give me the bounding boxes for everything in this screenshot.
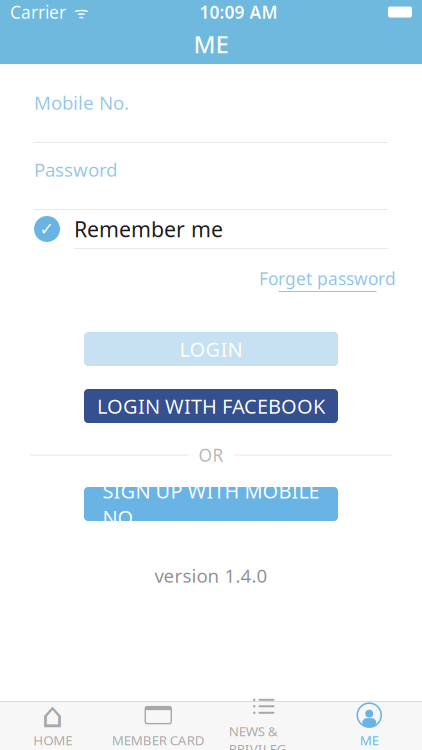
staticText: version 1.4.0 (154, 563, 267, 588)
staticText: ME (360, 731, 379, 749)
staticText: 10:09 AM (199, 0, 277, 23)
staticText: LOGIN WITH FACEBOOK (97, 393, 325, 419)
staticText: ME (193, 28, 228, 60)
button[interactable]: SIGN UP WITH MOBILE NO. (84, 487, 338, 521)
button[interactable]: MEMBER CARD (105, 702, 211, 750)
staticText: Mobile No. (34, 90, 129, 115)
button[interactable]: ⌂ (0, 702, 105, 750)
button[interactable]: Password (0, 143, 422, 209)
staticText: Carrier (10, 0, 66, 23)
button[interactable]: Mobile No. (0, 64, 422, 142)
staticText: SIGN UP WITH MOBILE NO. (102, 477, 319, 531)
staticText: Remember me (74, 215, 223, 243)
button[interactable]: Forget password (259, 249, 422, 292)
staticText: Forget password (259, 267, 396, 290)
staticText: ✓ (39, 219, 54, 239)
staticText: OR (198, 443, 223, 466)
button[interactable]: LOGIN WITH FACEBOOK (84, 389, 338, 423)
button[interactable]: NEWS & PRIVILEG... (211, 702, 316, 750)
staticText: LOGIN (179, 336, 242, 362)
staticText: HOME (33, 731, 72, 749)
staticText: Password (34, 157, 117, 182)
staticText: NEWS & PRIVILEG... (229, 722, 299, 750)
staticText: ᯤ (66, 1, 89, 23)
staticText: MEMBER CARD (112, 731, 205, 749)
button[interactable]: LOGIN (84, 332, 338, 366)
button[interactable]: ✓ (0, 210, 422, 248)
button[interactable]: ME (316, 702, 422, 750)
staticText: ⌂ (42, 695, 64, 735)
